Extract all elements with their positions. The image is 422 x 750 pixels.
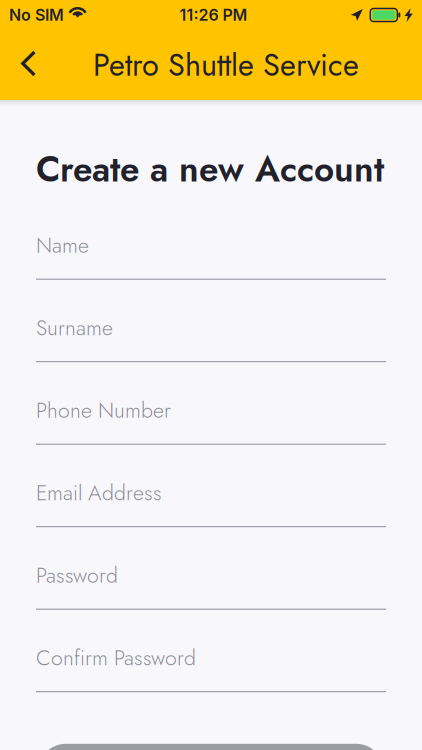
button[interactable]: Surname (36, 321, 386, 362)
staticText: Password (36, 560, 118, 591)
staticText: Phone Number (36, 395, 171, 426)
button[interactable]: Password (36, 569, 386, 610)
staticText: Email Address (36, 477, 162, 508)
staticText: Name (36, 230, 89, 261)
button[interactable]: Confirm Password (36, 651, 386, 692)
staticText: No SIM (9, 5, 64, 25)
button[interactable]: Phone Number (36, 404, 386, 445)
button[interactable]: Back (0, 30, 52, 100)
button[interactable]: Email Address (36, 486, 386, 527)
staticText: Petro Shuttle Service (93, 43, 359, 87)
button[interactable] (0, 744, 422, 750)
staticText: 11:26 PM (179, 5, 247, 25)
staticText: Create a new Account (36, 144, 384, 195)
staticText: Surname (36, 312, 113, 343)
button[interactable]: Name (36, 239, 386, 280)
staticText: Confirm Password (36, 642, 196, 673)
